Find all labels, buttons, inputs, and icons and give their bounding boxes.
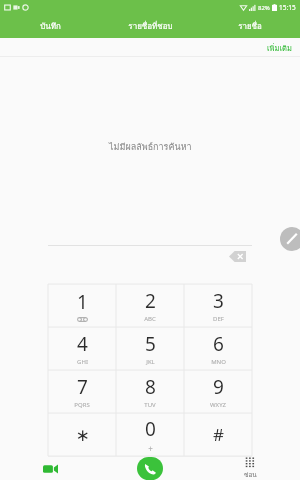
button[interactable]: ∗ bbox=[48, 413, 116, 456]
staticText: 82% bbox=[258, 4, 270, 12]
staticText: 9 bbox=[213, 374, 224, 400]
button[interactable]: ซ่อน bbox=[200, 457, 300, 480]
button[interactable]: Video call bbox=[0, 457, 100, 480]
staticText: เพิ่มเติม bbox=[267, 42, 292, 54]
staticText: JKL bbox=[146, 358, 155, 366]
staticText: DEF bbox=[213, 315, 224, 323]
staticText: ∗ bbox=[75, 425, 90, 445]
button[interactable]: Call bbox=[137, 457, 163, 480]
button[interactable]: 7 bbox=[48, 370, 116, 413]
button[interactable]: Edit bbox=[280, 227, 300, 251]
button[interactable]: 0 bbox=[116, 413, 184, 456]
staticText: 0 bbox=[145, 416, 156, 442]
staticText: 1 bbox=[77, 289, 88, 315]
staticText: 4 bbox=[77, 331, 88, 357]
button[interactable]: 4 bbox=[48, 327, 116, 370]
staticText: รายชื่อที่ชอบ bbox=[128, 20, 173, 33]
staticText: + bbox=[148, 443, 153, 454]
staticText: 15:15 bbox=[279, 3, 296, 12]
staticText: GHI bbox=[77, 358, 88, 366]
button[interactable]: 8 bbox=[116, 370, 184, 413]
button[interactable]: รายชื่อที่ชอบ bbox=[100, 14, 200, 38]
button[interactable]: 2 bbox=[116, 284, 184, 327]
staticText: 5 bbox=[145, 331, 156, 357]
staticText: TUV bbox=[144, 401, 156, 409]
button[interactable]: บันทึก bbox=[0, 14, 100, 38]
button[interactable]: 6 bbox=[184, 327, 252, 370]
staticText: 6 bbox=[213, 331, 224, 357]
button[interactable]: # bbox=[184, 413, 252, 456]
staticText: ไม่มีผลลัพธ์การค้นหา bbox=[109, 140, 192, 154]
button[interactable]: 1 bbox=[48, 284, 116, 327]
button[interactable]: 5 bbox=[116, 327, 184, 370]
staticText: ซ่อน bbox=[244, 470, 257, 480]
button[interactable]: Backspace bbox=[226, 248, 248, 264]
button[interactable]: 3 bbox=[184, 284, 252, 327]
staticText: PQRS bbox=[74, 401, 90, 409]
staticText: 7 bbox=[77, 374, 88, 400]
staticText: 3 bbox=[213, 288, 224, 314]
button[interactable]: 9 bbox=[184, 370, 252, 413]
staticText: WXYZ bbox=[210, 401, 226, 409]
staticText: รายชื่อ bbox=[238, 20, 262, 33]
staticText: MNO bbox=[211, 358, 226, 366]
staticText: # bbox=[213, 423, 224, 446]
staticText: บันทึก bbox=[40, 20, 61, 33]
button[interactable]: รายชื่อ bbox=[200, 14, 300, 38]
staticText: 2 bbox=[145, 288, 156, 314]
staticText: 8 bbox=[145, 374, 156, 400]
staticText: ABC bbox=[144, 315, 156, 323]
button[interactable]: เพิ่มเติม bbox=[267, 42, 292, 54]
